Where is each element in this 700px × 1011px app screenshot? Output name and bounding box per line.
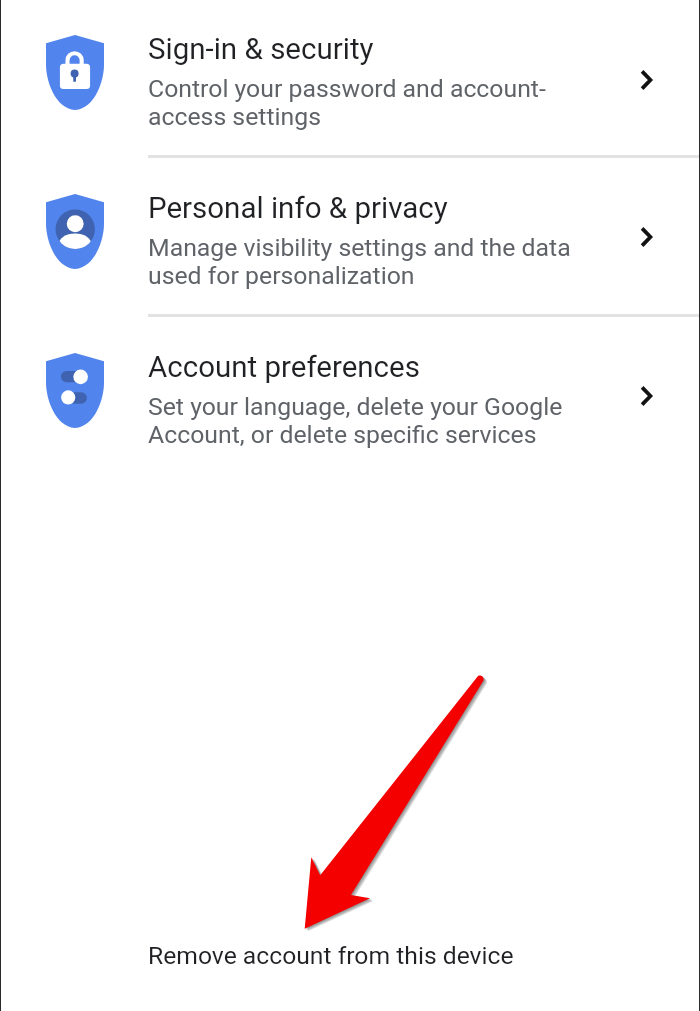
staticText: Control your password and account- acces… <box>148 74 546 131</box>
staticText: Remove account from this device <box>148 941 514 970</box>
button[interactable]: Sign-in & security <box>0 0 700 156</box>
button[interactable]: Remove account from this device <box>0 928 700 984</box>
button[interactable]: Open Account preferences <box>620 370 672 422</box>
button[interactable]: Personal info & privacy <box>0 156 700 315</box>
staticText: Personal info & privacy <box>148 191 448 226</box>
staticText: Set your language, delete your Google Ac… <box>148 392 563 449</box>
button[interactable]: Account preferences <box>0 315 700 474</box>
button[interactable]: Open Sign-in & security <box>620 54 672 106</box>
other: Sign-in & security <box>46 35 104 110</box>
staticText: Sign-in & security <box>148 32 374 67</box>
staticText: Manage visibility settings and the data … <box>148 233 571 290</box>
button[interactable]: Open Personal info & privacy <box>620 211 672 263</box>
other: Personal info & privacy <box>46 194 104 269</box>
other: Account preferences <box>46 353 104 428</box>
staticText: Account preferences <box>148 350 420 385</box>
